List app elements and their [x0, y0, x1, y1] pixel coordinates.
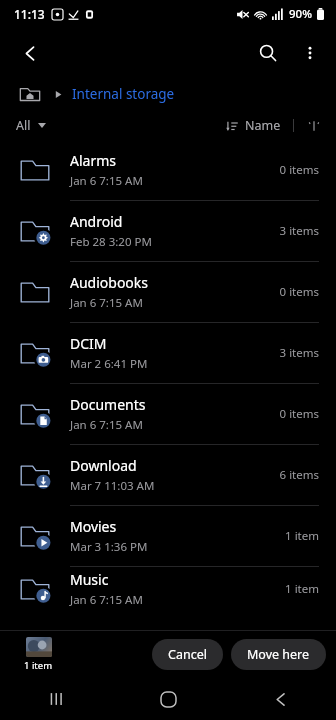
button[interactable]: Name	[224, 114, 283, 137]
button[interactable]: Move here	[231, 639, 326, 670]
button[interactable]: Internal storage	[72, 85, 175, 103]
staticText: Name	[245, 117, 281, 134]
button[interactable]: Alarms	[0, 140, 336, 200]
button[interactable]: All	[14, 115, 48, 136]
staticText: Movies	[70, 517, 117, 536]
button[interactable]: Documents	[0, 384, 336, 444]
staticText: Android	[70, 212, 123, 231]
button[interactable]: Movies	[0, 506, 336, 566]
button[interactable]: Download	[0, 445, 336, 505]
staticText: Mar 7 11:03 AM	[70, 478, 155, 494]
staticText: Music	[70, 570, 109, 589]
staticText: Move here	[247, 646, 310, 663]
staticText: Internal storage	[72, 85, 175, 103]
button[interactable]: More options	[290, 33, 330, 73]
button[interactable]: Cancel	[152, 639, 223, 670]
button[interactable]: Home	[112, 678, 224, 720]
staticText: 3 items	[279, 223, 319, 239]
staticText: Documents	[70, 395, 146, 414]
staticText: 0 items	[279, 406, 319, 422]
staticText: 3 items	[279, 345, 319, 361]
staticText: Cancel	[168, 646, 207, 663]
button[interactable]: Home	[18, 84, 42, 104]
staticText: 1 item	[24, 659, 53, 672]
button[interactable]: Audiobooks	[0, 262, 336, 322]
staticText: Download	[70, 456, 137, 475]
staticText: Audiobooks	[70, 273, 149, 292]
button[interactable]: Music	[0, 567, 336, 610]
button[interactable]: View as	[304, 116, 324, 136]
button[interactable]: DCIM	[0, 323, 336, 383]
staticText: 0 items	[279, 284, 319, 300]
staticText: Feb 28 3:20 PM	[70, 234, 152, 250]
staticText: Jan 6 7:15 AM	[70, 295, 143, 311]
staticText: Mar 3 1:36 PM	[70, 539, 148, 555]
button[interactable]: Android	[0, 201, 336, 261]
staticText: Mar 2 6:41 PM	[70, 356, 148, 372]
staticText: Alarms	[70, 151, 116, 170]
staticText: All	[16, 117, 31, 134]
button[interactable]: Recents	[0, 678, 112, 720]
staticText: 11:13	[14, 6, 45, 22]
staticText: Jan 6 7:15 AM	[70, 592, 143, 608]
staticText: Jan 6 7:15 AM	[70, 417, 143, 433]
staticText: Jan 6 7:15 AM	[70, 173, 143, 189]
button[interactable]: Search	[246, 31, 290, 75]
staticText: DCIM	[70, 334, 107, 353]
staticText: 0 items	[279, 162, 319, 178]
staticText: 1 item	[285, 528, 319, 544]
button[interactable]: Back	[224, 678, 336, 720]
staticText: 90%	[289, 6, 312, 22]
staticText: 6 items	[279, 467, 319, 483]
staticText: 1 item	[285, 581, 319, 597]
button[interactable]: Back	[8, 31, 52, 75]
